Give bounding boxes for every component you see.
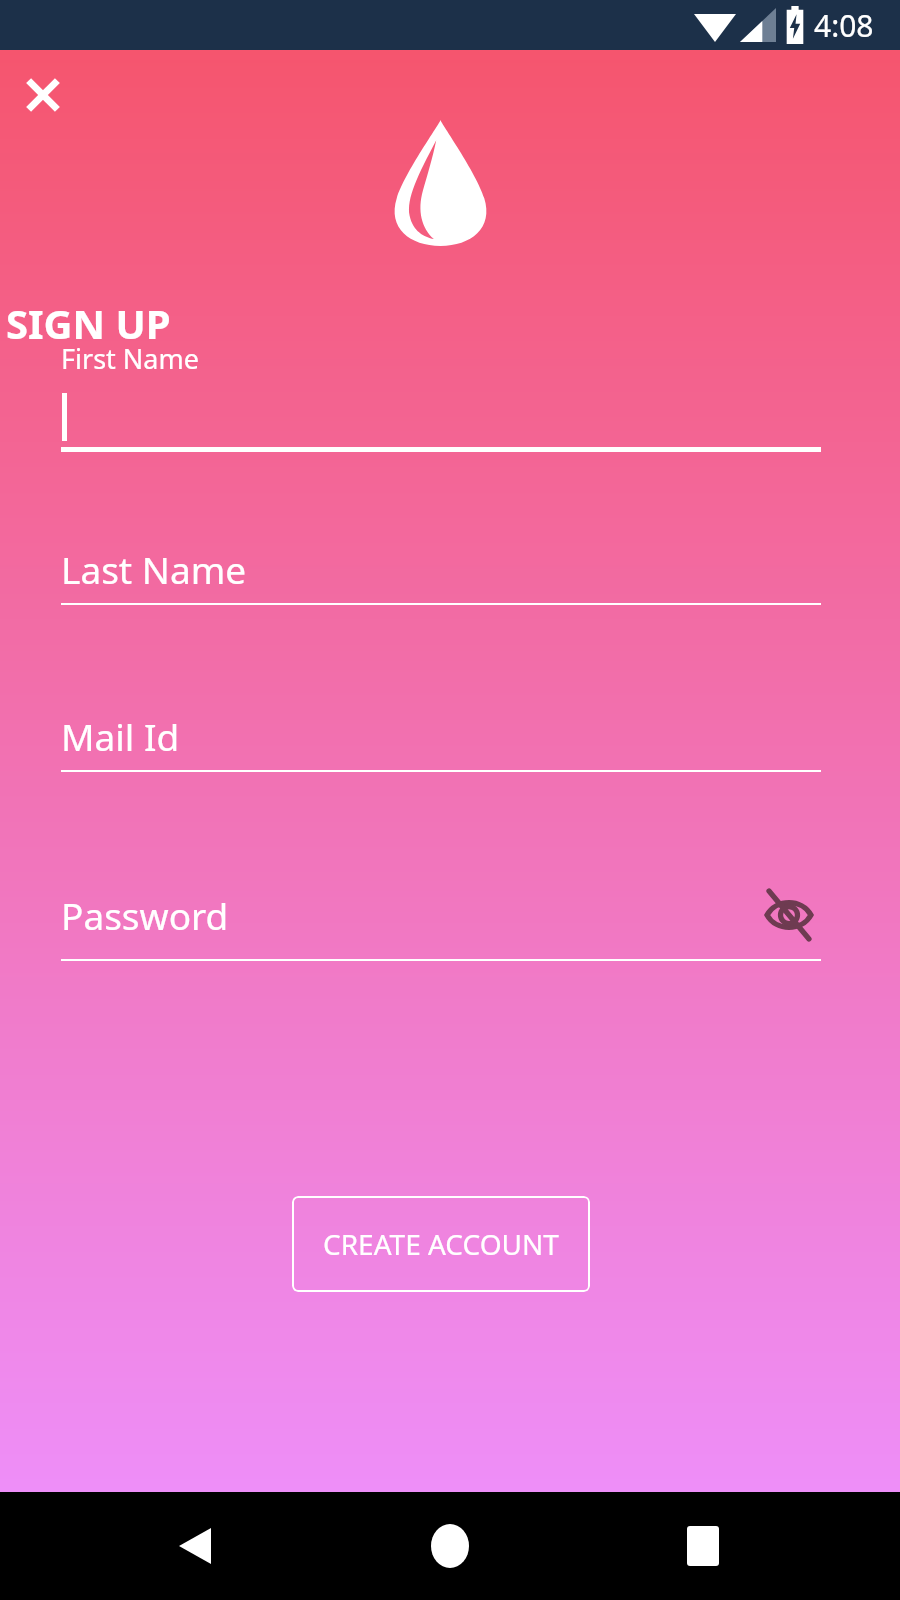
button[interactable]: CREATE ACCOUNT	[292, 1196, 590, 1292]
button[interactable]: Home	[405, 1501, 495, 1591]
staticText: 4:08	[814, 5, 874, 46]
staticText: Last Name	[61, 544, 247, 594]
button[interactable]: Password	[61, 881, 821, 961]
button[interactable]: Last Name	[61, 540, 821, 605]
staticText: SIGN UP	[6, 296, 171, 350]
button[interactable]: Mail Id	[61, 707, 821, 772]
staticText: First Name	[61, 340, 199, 377]
button[interactable]	[61, 380, 821, 452]
button[interactable]: Recent apps	[658, 1501, 748, 1591]
button[interactable]: Show password	[757, 883, 821, 947]
staticText: CREATE ACCOUNT	[323, 1225, 559, 1263]
button[interactable]: Close	[8, 60, 78, 130]
staticText: Password	[61, 890, 229, 940]
button[interactable]: Back	[150, 1501, 240, 1591]
staticText: Mail Id	[61, 711, 180, 761]
